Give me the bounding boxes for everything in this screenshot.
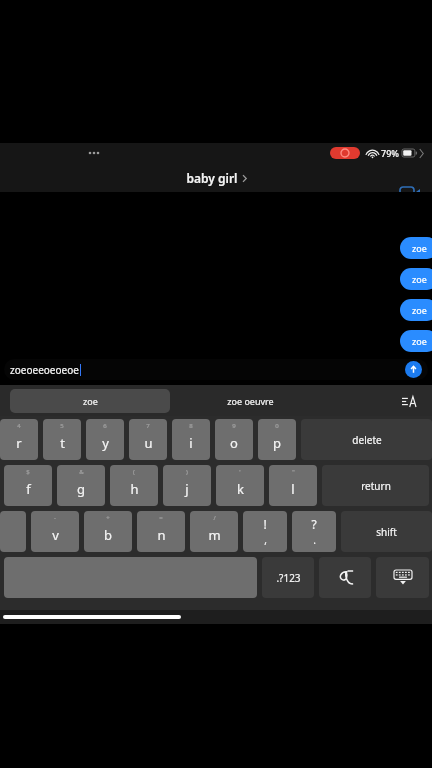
button[interactable]: 6 [86,419,124,460]
button[interactable]: 4 [0,419,38,460]
button[interactable]: zoe [400,392,432,399]
staticText: ' [239,468,241,476]
staticText: m [208,526,221,544]
button[interactable]: FaceTime video call [388,178,432,208]
staticText: ( [133,468,135,476]
button[interactable]: zoe [400,237,432,259]
staticText: h [130,480,139,498]
staticText: return [361,479,391,493]
staticText: zoe [412,335,427,347]
button[interactable]: = [137,511,185,552]
staticText: . [313,533,316,547]
button[interactable]: $ [4,465,52,506]
staticText: " [292,468,295,476]
button[interactable]: zoe [10,389,170,413]
staticText: zoe oeuvre [227,395,274,407]
staticText: l [291,480,295,498]
button[interactable]: ' [216,465,264,506]
staticText: 9 [232,422,236,430]
staticText: zoe [412,392,427,399]
button[interactable]: ! [243,511,287,552]
staticText: + [106,514,110,522]
staticText: zoe [412,242,427,254]
button[interactable]: zoe [400,268,432,290]
button[interactable]: baby girl [186,170,247,186]
button[interactable]: / [190,511,238,552]
button[interactable]: ? [292,511,336,552]
button[interactable]: 0 [258,419,296,460]
button[interactable]: 9 [215,419,253,460]
staticText: zoe [83,395,98,407]
staticText: 4 [17,422,21,430]
staticText: = [159,514,163,522]
button[interactable]: zoe oeuvre [200,389,300,413]
staticText: zoe [412,366,427,378]
staticText: u [144,434,153,452]
staticText: ! [263,516,267,532]
staticText: zoeoeeoeoeoe [10,363,79,377]
staticText: ) [186,468,188,476]
button[interactable]: 8 [172,419,210,460]
staticText: 8 [189,422,193,430]
button[interactable]: ) [163,465,211,506]
staticText: f [26,480,31,498]
staticText: 5 [60,422,64,430]
staticText: y [102,434,109,452]
button[interactable]: + [84,511,132,552]
staticText: - [54,514,56,522]
staticText: o [230,434,238,452]
staticText: 0 [275,422,279,430]
staticText: .?123 [276,571,301,585]
button[interactable]: - [31,511,79,552]
staticText: 6 [103,422,107,430]
staticText: v [52,526,59,544]
button[interactable]: zoe [400,330,432,352]
staticText: g [77,480,85,498]
button[interactable]: Dismiss keyboard [376,557,429,598]
staticText: p [273,434,281,452]
button[interactable]: delete [301,419,432,460]
staticText: n [157,526,166,544]
button[interactable]: zoe [400,299,432,321]
staticText: ? [311,516,317,532]
button[interactable]: & [57,465,105,506]
staticText: , [264,533,267,547]
button[interactable]: Shift [341,511,432,552]
button[interactable] [0,511,26,552]
staticText: t [60,434,65,452]
button[interactable]: zoeoeeoeoeoe [4,359,428,380]
button[interactable]: .?123 [262,557,314,598]
staticText: zoe [412,304,427,316]
staticText: $ [26,468,30,476]
staticText: / [213,514,216,522]
staticText: r [16,434,22,452]
staticText: baby girl [186,170,238,186]
button[interactable]: ( [110,465,158,506]
button[interactable]: 5 [43,419,81,460]
staticText: i [189,434,193,452]
staticText: b [104,526,112,544]
button[interactable]: " [269,465,317,506]
staticText: & [79,468,84,476]
button[interactable]: 7 [129,419,167,460]
staticText: 7 [146,422,150,430]
staticText: k [237,480,244,498]
staticText: zoe [412,273,427,285]
staticText: 79% [381,147,399,159]
button[interactable]: return [322,465,429,506]
staticText: shift [376,525,397,539]
staticText: delete [352,433,382,447]
button[interactable]: Text formatting [396,388,422,414]
staticText: j [185,480,189,498]
button[interactable]: Handwriting [319,557,371,598]
button[interactable]: zoe [400,361,432,383]
button[interactable]: Send [405,361,422,378]
